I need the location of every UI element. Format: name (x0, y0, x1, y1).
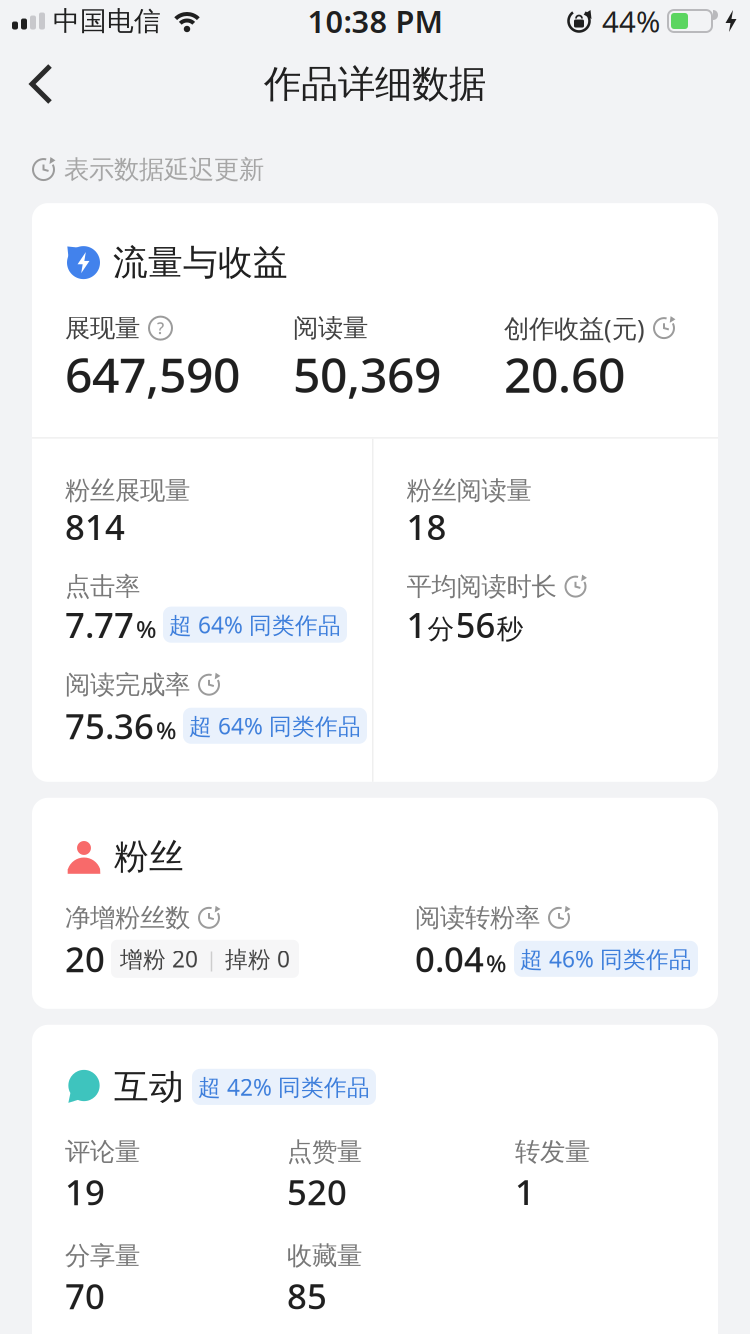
staticText: 点击率 (65, 571, 140, 602)
staticText: ? (157, 317, 164, 339)
staticText: 掉粉 0 (225, 944, 290, 974)
staticText: 转发量 (515, 1136, 590, 1167)
staticText: % (486, 947, 506, 979)
staticText: 1 (406, 602, 426, 648)
staticText: 647,590 (65, 342, 240, 406)
staticText: 增粉 20 (120, 944, 198, 974)
staticText: 814 (65, 504, 125, 550)
staticText: 1 (515, 1169, 535, 1215)
button[interactable]: Back (0, 50, 54, 118)
staticText: 分 (427, 613, 454, 646)
staticText: 作品详细数据 (264, 61, 486, 107)
staticText: 阅读量 (293, 313, 368, 344)
staticText: 展现量 (65, 313, 140, 344)
staticText: 20.60 (504, 342, 625, 406)
staticText: 超 64% 同类作品 (189, 711, 361, 741)
staticText: 20 (65, 936, 105, 982)
staticText: 超 64% 同类作品 (169, 610, 341, 640)
staticText: 19 (65, 1169, 105, 1215)
staticText: 点赞量 (287, 1136, 362, 1167)
staticText: 评论量 (65, 1136, 140, 1167)
staticText: 秒 (496, 613, 523, 646)
staticText: 互动 (114, 1066, 184, 1108)
staticText: | (206, 945, 217, 972)
staticText: % (136, 613, 156, 645)
staticText: % (156, 714, 176, 746)
button[interactable]: Help (148, 316, 173, 341)
staticText: 收藏量 (287, 1240, 362, 1271)
staticText: 70 (65, 1273, 105, 1319)
staticText: 阅读完成率 (65, 669, 190, 700)
staticText: 阅读转粉率 (415, 902, 540, 933)
staticText: 分享量 (65, 1240, 140, 1271)
staticText: 中国电信 (53, 5, 161, 37)
staticText: 0.04 (415, 936, 484, 982)
staticText: 净增粉丝数 (65, 902, 190, 933)
staticText: 85 (287, 1273, 327, 1319)
staticText: 流量与收益 (113, 241, 288, 284)
staticText: 7.77 (65, 602, 134, 648)
staticText: 表示数据延迟更新 (64, 154, 264, 185)
staticText: 创作收益(元) (504, 311, 645, 345)
staticText: 18 (406, 504, 446, 550)
staticText: 75.36 (65, 703, 154, 749)
staticText: 平均阅读时长 (406, 571, 556, 602)
staticText: 粉丝阅读量 (406, 475, 531, 506)
staticText: 520 (287, 1169, 347, 1215)
staticText: 56 (455, 602, 495, 648)
staticText: 超 42% 同类作品 (198, 1072, 370, 1102)
staticText: 44% (602, 1, 660, 40)
staticText: 50,369 (293, 342, 441, 406)
staticText: 粉丝展现量 (65, 475, 190, 506)
staticText: 粉丝 (114, 835, 184, 878)
staticText: 超 46% 同类作品 (520, 944, 692, 974)
staticText: 10:38 PM (307, 1, 442, 41)
